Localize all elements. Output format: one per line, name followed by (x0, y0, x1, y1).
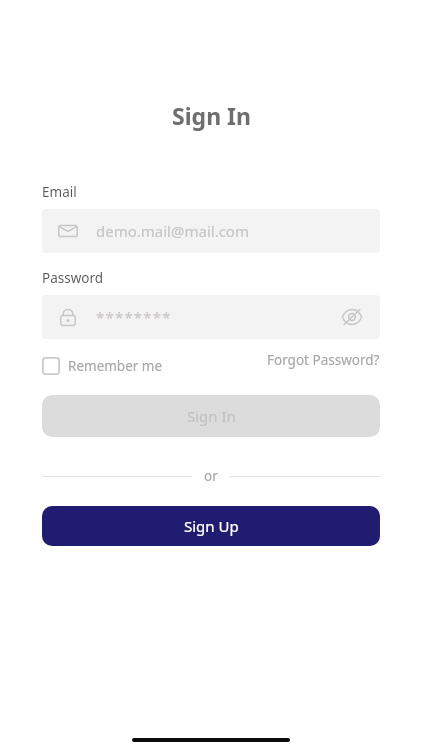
staticText: Forgot Password? (267, 351, 380, 369)
button[interactable]: ******** (42, 295, 380, 339)
button[interactable]: Show password (338, 303, 366, 331)
staticText: Remember me (68, 357, 163, 375)
button[interactable]: Sign In (42, 395, 380, 437)
staticText: Sign In (172, 100, 251, 131)
staticText: Email (42, 183, 77, 201)
staticText: Sign In (187, 406, 236, 426)
staticText: ******** (96, 307, 172, 327)
button[interactable]: Sign Up (42, 506, 380, 546)
button[interactable]: Forgot Password? (267, 351, 380, 369)
staticText: Sign Up (184, 516, 239, 536)
staticText: Password (42, 269, 104, 287)
button[interactable]: demo.mail@mail.com (42, 209, 380, 253)
staticText: or (204, 467, 218, 485)
staticText: demo.mail@mail.com (96, 221, 249, 241)
button[interactable]: Remember me (42, 357, 163, 375)
